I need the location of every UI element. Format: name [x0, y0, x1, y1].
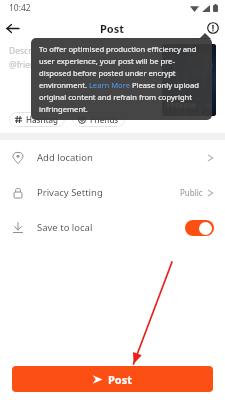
button[interactable]: Preview media — [162, 44, 216, 116]
staticText: Post — [108, 372, 133, 387]
staticText: Descr — [9, 45, 32, 57]
button[interactable]: Information — [201, 16, 225, 40]
staticText: Add location — [37, 151, 93, 164]
button[interactable]: Post — [12, 366, 213, 392]
staticText: @frien — [9, 59, 36, 71]
staticText: 10:42 — [9, 2, 31, 14]
button[interactable]: Friends — [72, 112, 125, 127]
staticText: Privacy Setting — [37, 186, 103, 199]
staticText: To offer optimised production efficiency… — [39, 44, 204, 114]
staticText: Preview — [167, 99, 197, 110]
staticText: Public — [180, 187, 203, 198]
button[interactable]: Save to local — [0, 210, 225, 245]
staticText: Save to local — [37, 221, 93, 234]
staticText: Friends — [90, 114, 119, 125]
button[interactable]: Back — [0, 16, 24, 40]
button[interactable]: Hashtag — [9, 112, 65, 127]
button[interactable]: To offer optimised production efficiency… — [31, 38, 212, 120]
button[interactable]: Add location — [0, 140, 225, 175]
staticText: Post — [100, 21, 125, 36]
staticText: Hashtag — [26, 114, 59, 125]
button[interactable]: Privacy Setting — [0, 175, 225, 210]
button[interactable]: Save to local toggle — [185, 220, 214, 236]
